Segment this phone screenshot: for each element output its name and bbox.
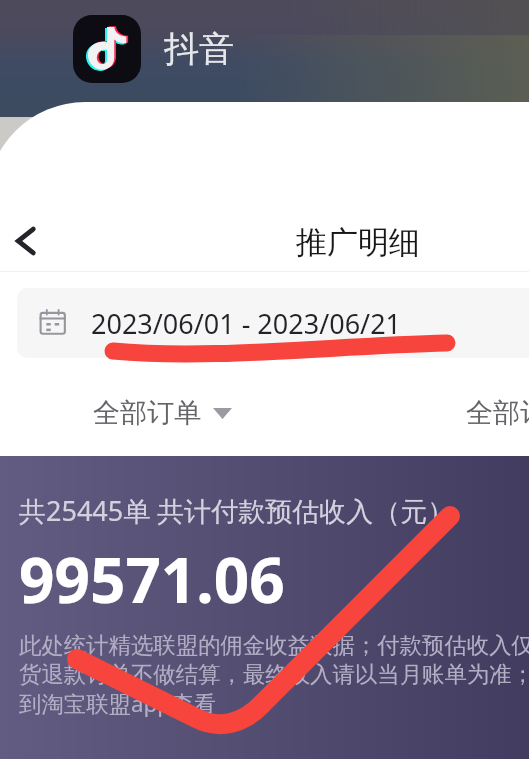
staticText: 99571.06 (19, 537, 285, 621)
staticText: 2023/06/01 - 2023/06/21 (91, 305, 402, 342)
button[interactable]: 2023/06/01 - 2023/06/21 (17, 288, 529, 358)
button[interactable]: 全部订单 (466, 396, 529, 430)
staticText: 抖音 (164, 27, 234, 71)
staticText: 此处统计精选联盟的佣金收益数据；付款预估收入仅供参考，退货退款订单不做结算，最终… (19, 631, 529, 718)
staticText: 共25445单 共计付款预估收入（元） (19, 492, 455, 529)
button[interactable]: 全部订单 (93, 396, 232, 430)
button[interactable]: Douyin (73, 15, 141, 83)
staticText: 推广明细 (296, 223, 420, 262)
staticText: 全部订单 (466, 396, 529, 430)
staticText: 全部订单 (93, 396, 201, 430)
button[interactable]: Back (1, 216, 51, 266)
